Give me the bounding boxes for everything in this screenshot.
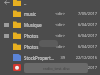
button[interactable]: Photos [0,41,100,52]
staticText: 39 [55,55,65,60]
button[interactable]: Musique [0,19,100,30]
staticText: StockProperties.plist [24,55,55,61]
button[interactable]: music [0,8,100,19]
staticText: 6/04/2017 04:36 PM [67,33,97,38]
staticText: radio_test.disc [43,66,70,71]
staticText: <dir> [55,22,65,27]
staticText: 22/12/2016 04:47 PM [67,55,97,60]
button[interactable]: Up one level [0,0,100,8]
staticText: 6/04/2017 10:24 PM [67,44,97,49]
staticText: 7/05/2017 05:06 PM [67,65,97,70]
button[interactable]: StockProperties.plist [0,52,100,63]
button[interactable]: radio_test.disc [0,63,100,72]
staticText: <dir> [55,11,65,16]
staticText: <dir> [55,44,65,49]
staticText: 2 [55,65,65,70]
staticText: Musique [24,22,55,28]
staticText: 7/05/2017 05:27 PM [67,11,97,16]
staticText: music [24,11,55,17]
staticText: Photos [24,33,55,39]
staticText: <dir> [55,33,65,38]
staticText: .. [24,0,100,6]
staticText: 6/04/2017 04:37 PM [67,22,97,27]
staticText: radio_test.disc [24,65,55,71]
button[interactable]: Photos [0,30,100,41]
other: Up one level [4,0,10,5]
staticText: Photos [24,44,55,50]
